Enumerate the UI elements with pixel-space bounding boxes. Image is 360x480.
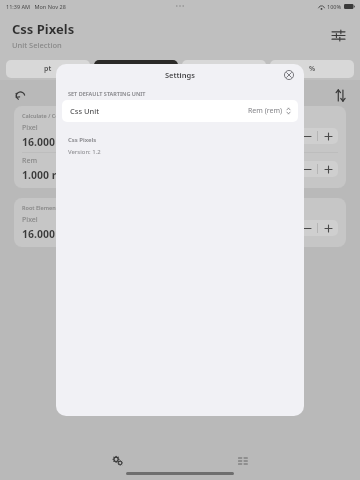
staticText: Pixel [22,215,38,225]
button[interactable]: Filters [326,23,350,47]
staticText: 16.000 px [22,227,71,241]
staticText: Root Element Size [22,204,70,211]
staticText: Css Pixels [68,136,97,144]
button[interactable]: Sort [330,85,350,105]
button[interactable]: Decrease [297,161,317,177]
button[interactable]: Decrease [297,128,317,144]
staticText: pt [44,64,52,74]
button[interactable]: Increase [318,128,338,144]
button[interactable]: Grid view [232,450,254,472]
staticText: 100% [327,3,342,10]
button[interactable]: % [270,60,354,78]
button[interactable]: Increase [318,220,338,236]
button[interactable]: Increase [318,161,338,177]
staticText: % [309,64,316,74]
staticText: Settings [165,70,195,80]
staticText: 1.000 rem [22,168,73,182]
button[interactable]: rem [94,60,178,78]
staticText: SET DEFAULT STARTING UNIT [68,90,146,97]
staticText: Calculate / Convert [22,112,74,119]
staticText: Rem (rem) [248,106,283,116]
button[interactable]: Decrease [297,220,317,236]
button[interactable]: em [182,60,266,78]
staticText: 16.000 px [22,135,71,149]
button[interactable]: Close [281,67,297,83]
button[interactable]: Settings [107,450,129,472]
staticText: Css Unit [70,106,100,116]
button[interactable]: pt [6,60,90,78]
staticText: Version: 1.2 [68,148,101,156]
staticText: Css Pixels [12,20,75,38]
button[interactable]: Css Unit [62,100,298,122]
staticText: 11:39 AM Mon Nov 28 [6,3,66,10]
staticText: Pixel [22,123,38,133]
button[interactable]: Undo [10,85,30,105]
staticText: Rem [22,156,38,166]
staticText: Unit Selection [12,40,62,50]
